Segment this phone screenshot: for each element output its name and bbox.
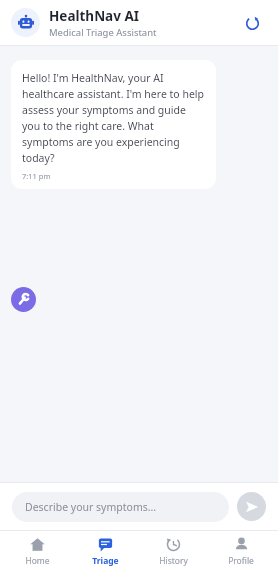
staticText: Triage bbox=[92, 555, 119, 567]
button[interactable]: Tool activity bbox=[11, 287, 36, 312]
staticText: Hello! I'm HealthNav, your AI healthcare… bbox=[22, 71, 206, 165]
button[interactable]: Hello! I'm HealthNav, your AI healthcare… bbox=[11, 60, 216, 189]
staticText: History bbox=[159, 555, 188, 567]
staticText: 7:11 pm bbox=[22, 171, 51, 181]
button[interactable]: Describe your symptoms... bbox=[12, 492, 229, 522]
staticText: HealthNav AI bbox=[49, 7, 140, 25]
button[interactable]: Home bbox=[6, 533, 68, 571]
button[interactable]: History bbox=[142, 533, 204, 571]
staticText: Medical Triage Assistant bbox=[49, 26, 157, 39]
staticText: Profile bbox=[228, 555, 254, 567]
staticText: Home bbox=[25, 555, 50, 567]
button[interactable]: Send bbox=[237, 492, 266, 521]
staticText: Describe your symptoms... bbox=[25, 500, 157, 514]
button[interactable]: Restart conversation bbox=[237, 8, 267, 38]
button[interactable]: Triage bbox=[74, 533, 136, 571]
button[interactable]: Profile bbox=[210, 533, 272, 571]
